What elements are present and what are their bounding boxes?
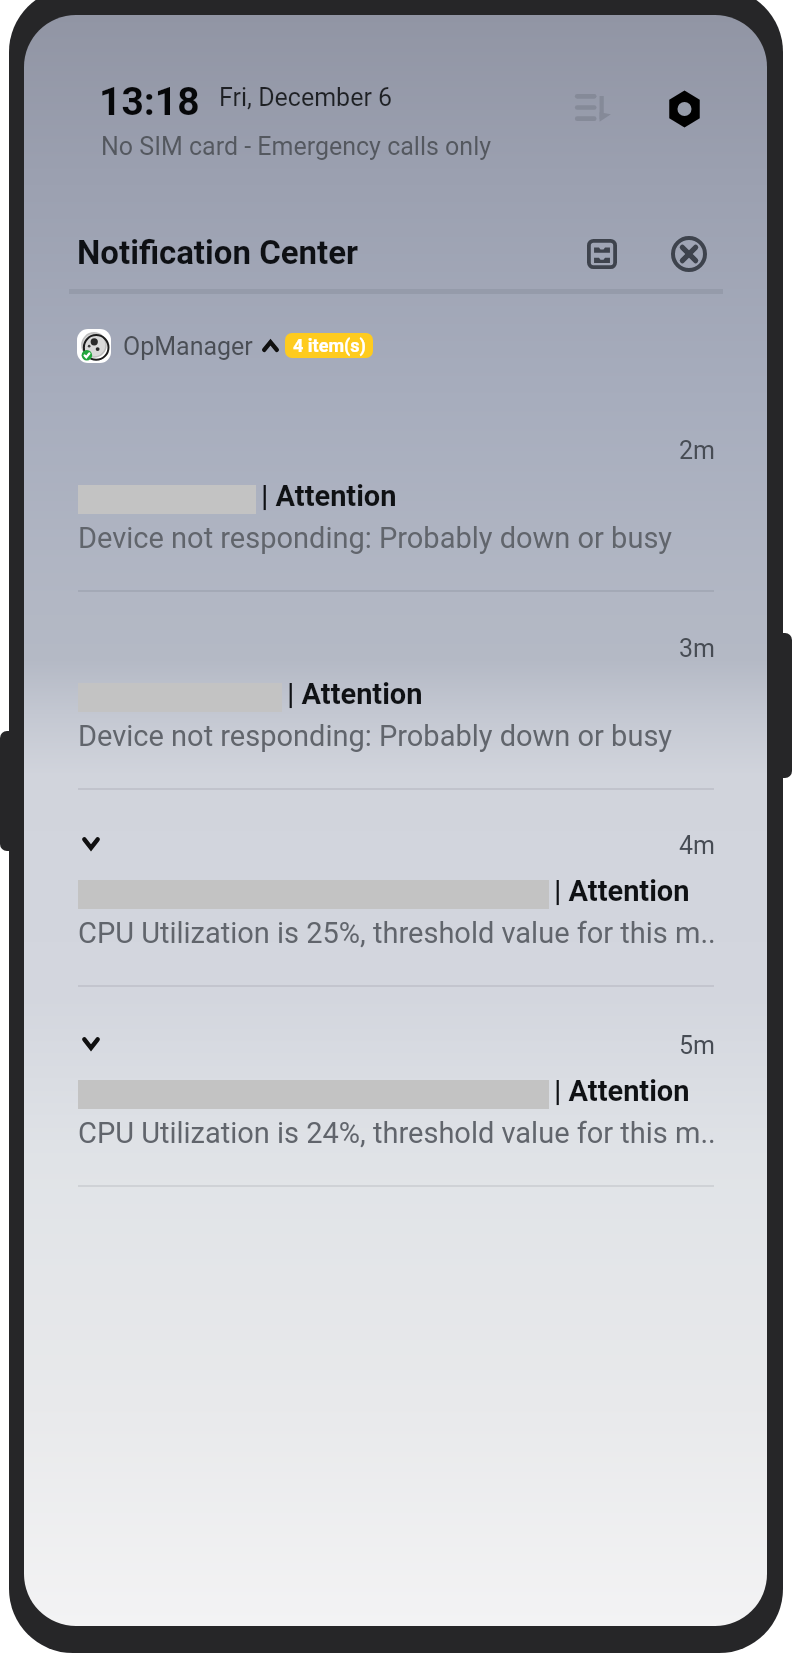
staticText: 13:18 [99,79,200,125]
button[interactable]: OpManager [74,327,376,365]
staticText: 4 item(s) [293,335,366,356]
staticText: Device not responding: Probably down or … [78,521,673,555]
button[interactable]: Sort notifications [558,75,622,139]
staticText: | Attention [554,874,690,908]
button[interactable]: 4m [78,789,738,987]
staticText: 3m [679,634,715,663]
staticText: 2m [679,436,715,465]
staticText: CPU Utilization is 24%, threshold value … [78,1116,716,1150]
staticText: | Attention [554,1074,690,1108]
staticText: CPU Utilization is 25%, threshold value … [78,916,716,950]
button[interactable]: Settings [652,77,716,141]
button[interactable]: 3m [78,592,738,790]
staticText: OpManager [123,332,253,361]
staticText: | Attention [287,677,423,711]
staticText: | Attention [261,479,397,513]
staticText: 5m [679,1031,715,1060]
button[interactable]: Clear all notifications [657,222,721,286]
button[interactable]: 2m [78,394,738,592]
button[interactable]: Notification history [570,222,634,286]
staticText: Device not responding: Probably down or … [78,719,673,753]
staticText: 4m [679,831,715,860]
staticText: Notification Center [77,233,359,272]
staticText: No SIM card - Emergency calls only [101,132,492,161]
staticText: Fri, December 6 [219,83,393,112]
button[interactable]: 5m [78,989,738,1187]
